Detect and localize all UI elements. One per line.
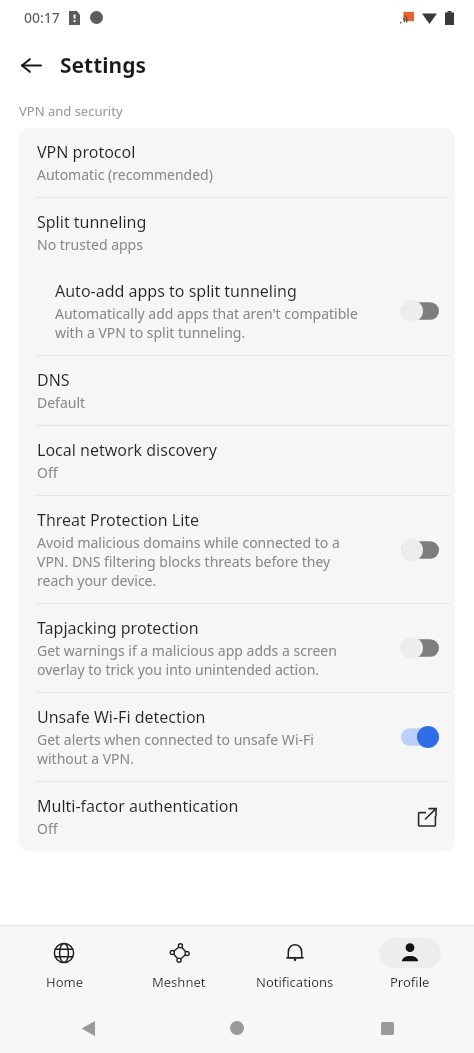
staticText: Default xyxy=(37,393,86,412)
button[interactable]: Tapjacking protection xyxy=(19,604,455,692)
button[interactable]: Meshnet xyxy=(127,932,231,997)
staticText: Automatically add apps that aren't compa… xyxy=(55,304,358,342)
button[interactable]: Toggle off xyxy=(401,637,439,659)
staticText: Unsafe Wi-Fi detection xyxy=(37,706,206,728)
staticText: Split tunneling xyxy=(37,211,147,233)
staticText: Tapjacking protection xyxy=(37,617,199,639)
staticText: Off xyxy=(37,819,58,838)
staticText: DNS xyxy=(37,369,70,391)
button[interactable]: Unsafe Wi-Fi detection xyxy=(19,693,455,781)
button[interactable]: Threat Protection Lite xyxy=(19,496,455,603)
staticText: Meshnet xyxy=(152,973,206,991)
staticText: Notifications xyxy=(256,973,334,991)
button[interactable]: Toggle off xyxy=(401,539,439,561)
button[interactable]: Home xyxy=(12,932,116,997)
button[interactable]: Auto-add apps to split tunneling xyxy=(19,267,455,355)
button[interactable]: Back xyxy=(70,1011,104,1045)
staticText: No trusted apps xyxy=(37,235,143,254)
staticText: Profile xyxy=(390,973,430,991)
staticText: Auto-add apps to split tunneling xyxy=(55,280,297,302)
button[interactable]: DNS xyxy=(19,356,455,425)
staticText: 00:17 xyxy=(24,8,60,27)
button[interactable]: VPN protocol xyxy=(19,128,455,197)
button[interactable]: Split tunneling xyxy=(19,198,455,267)
button[interactable]: Toggle off xyxy=(401,300,439,322)
button[interactable]: Back xyxy=(10,44,52,86)
staticText: Multi-factor authentication xyxy=(37,795,239,817)
staticText: Get warnings if a malicious app adds a s… xyxy=(37,641,337,679)
button[interactable]: Profile xyxy=(358,932,462,997)
staticText: Home xyxy=(46,973,83,991)
staticText: Off xyxy=(37,463,58,482)
button[interactable]: Notifications xyxy=(243,932,347,997)
button[interactable]: Toggle on xyxy=(401,726,439,748)
staticText: Settings xyxy=(60,51,147,80)
staticText: Automatic (recommended) xyxy=(37,165,213,184)
button[interactable]: Recents xyxy=(370,1011,404,1045)
staticText: VPN protocol xyxy=(37,141,136,163)
staticText: Local network discovery xyxy=(37,439,217,461)
staticText: Threat Protection Lite xyxy=(37,509,200,531)
button[interactable]: Local network discovery xyxy=(19,426,455,495)
button[interactable]: Home xyxy=(220,1011,254,1045)
button[interactable]: Multi-factor authentication xyxy=(19,782,455,851)
staticText: Avoid malicious domains while connected … xyxy=(37,533,340,590)
staticText: VPN and security xyxy=(19,102,123,120)
staticText: Get alerts when connected to unsafe Wi-F… xyxy=(37,730,314,768)
